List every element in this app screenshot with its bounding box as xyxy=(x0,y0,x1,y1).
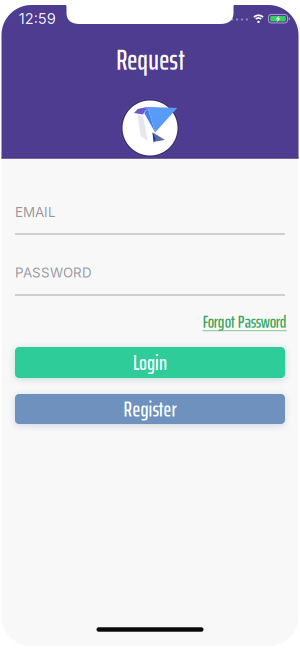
staticText: EMAIL xyxy=(15,204,56,220)
button[interactable]: EMAIL xyxy=(15,205,285,235)
staticText: 12:59 xyxy=(19,10,56,27)
staticText: Login xyxy=(133,345,167,379)
button[interactable]: PASSWORD xyxy=(15,266,285,296)
button[interactable]: Forgot Password xyxy=(203,307,287,335)
staticText: Register xyxy=(123,392,176,426)
staticText: PASSWORD xyxy=(15,264,92,281)
staticText: Forgot Password xyxy=(203,307,287,335)
button[interactable]: Login xyxy=(15,347,285,378)
staticText: Request xyxy=(116,37,185,82)
button[interactable]: Register xyxy=(15,394,285,424)
